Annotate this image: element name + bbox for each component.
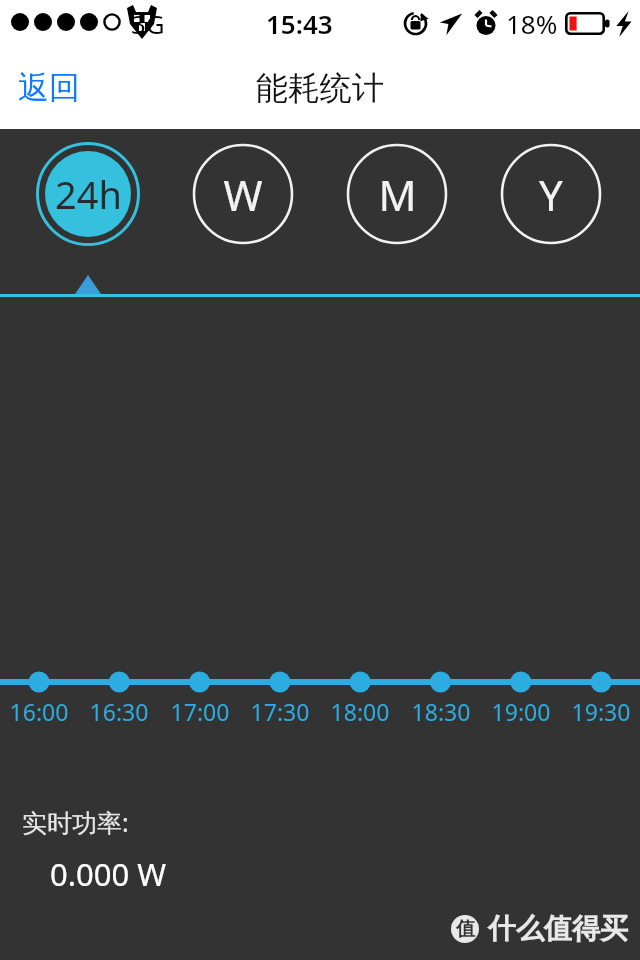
button[interactable]: Y: [499, 142, 603, 246]
staticText: 18%: [506, 6, 558, 41]
staticText: 能耗统计: [256, 68, 384, 108]
staticText: 19:30: [565, 696, 637, 727]
staticText: 19:00: [485, 696, 557, 727]
button[interactable]: W: [191, 142, 295, 246]
staticText: W: [223, 166, 263, 223]
button[interactable]: 24h: [36, 142, 140, 246]
button[interactable]: 返回: [0, 62, 94, 113]
button[interactable]: M: [345, 142, 449, 246]
staticText: Y: [539, 166, 563, 223]
staticText: 返回: [18, 68, 80, 107]
staticText: 17:00: [164, 696, 236, 727]
staticText: 18:30: [405, 696, 477, 727]
staticText: 24h: [55, 168, 122, 220]
staticText: M: [378, 166, 417, 223]
staticText: 16:00: [3, 696, 75, 727]
staticText: 3G: [131, 6, 165, 41]
staticText: 0.000 W: [50, 853, 167, 895]
staticText: 值: [456, 917, 475, 941]
staticText: 17:30: [244, 696, 316, 727]
staticText: 实时功率:: [22, 805, 129, 839]
staticText: 18:00: [324, 696, 396, 727]
staticText: 15:43: [266, 6, 333, 41]
staticText: 16:30: [83, 696, 155, 727]
staticText: 什么值得买: [488, 911, 628, 946]
